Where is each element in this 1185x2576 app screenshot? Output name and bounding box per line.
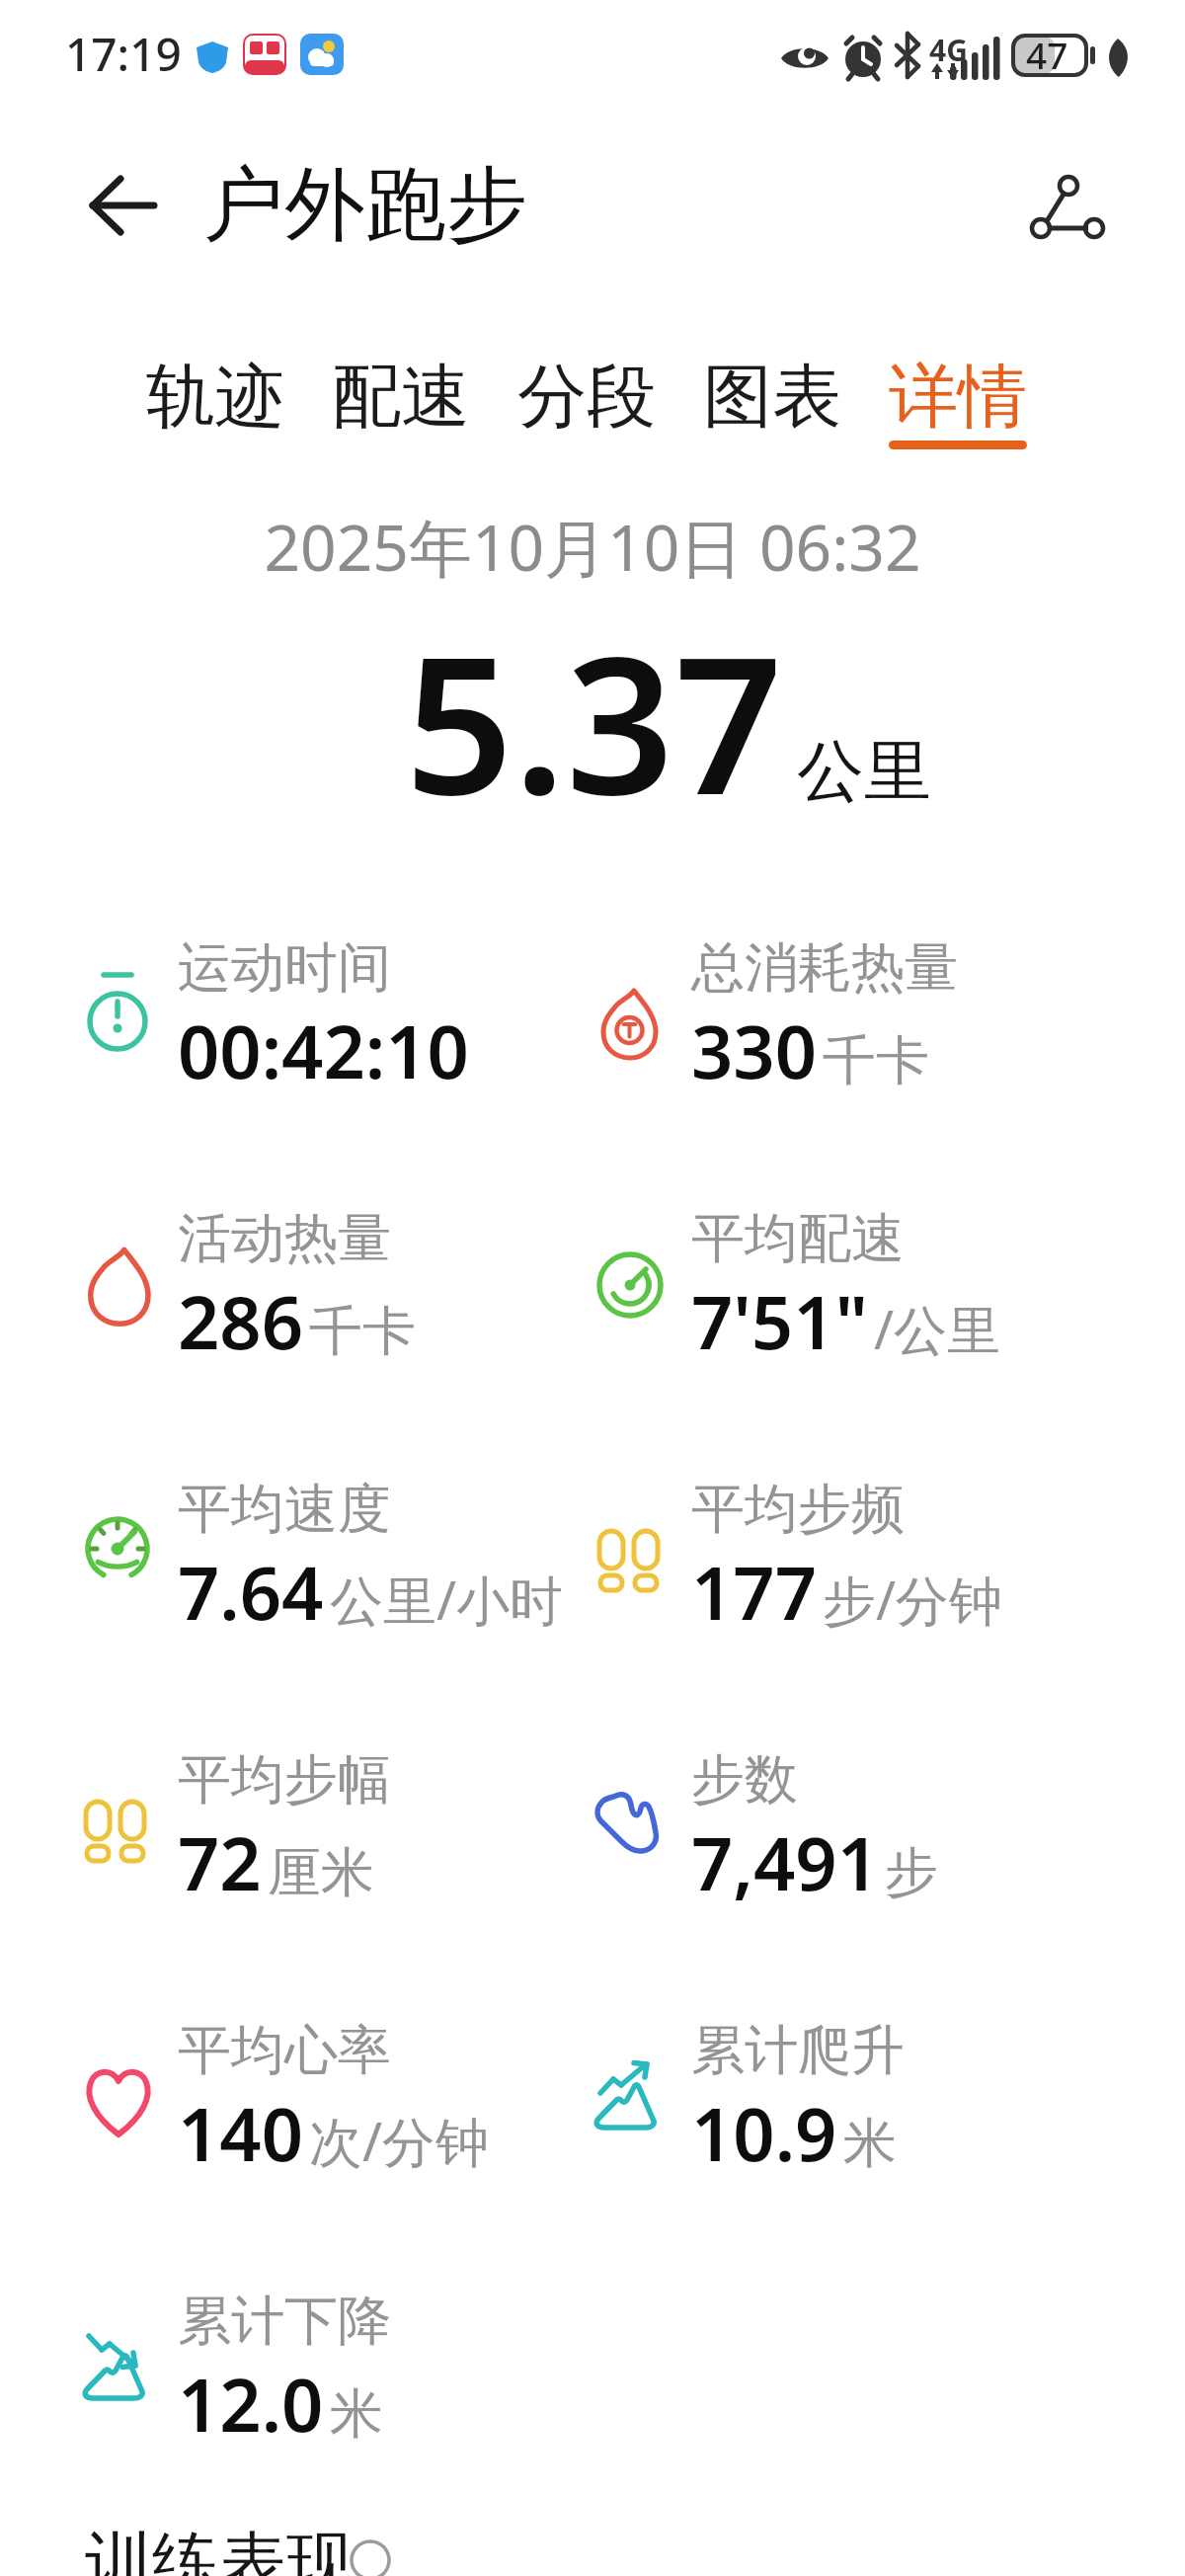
- staticText: 千卡: [309, 1298, 416, 1365]
- button[interactable]: [87, 174, 162, 237]
- staticText: 140: [178, 2083, 303, 2183]
- staticText: 286: [178, 1271, 303, 1371]
- staticText: 17:19: [65, 23, 182, 85]
- staticText: 公里: [797, 730, 931, 815]
- staticText: 运动时间: [178, 934, 391, 1002]
- staticText: 00:42:10: [178, 1001, 469, 1100]
- staticText: 72: [178, 1812, 262, 1912]
- staticText: 步: [885, 1839, 938, 1906]
- staticText: 177: [691, 1542, 817, 1642]
- staticText: 330: [691, 1001, 817, 1100]
- staticText: /公里: [874, 1292, 1001, 1365]
- staticText: 平均步频: [691, 1476, 905, 1543]
- staticText: 7.64: [178, 1542, 324, 1642]
- staticText: 厘米: [268, 1839, 374, 1906]
- button[interactable]: 配速: [332, 354, 470, 441]
- button[interactable]: 轨迹: [146, 354, 284, 441]
- staticText: 训练表现: [85, 2522, 354, 2576]
- button[interactable]: 分段: [517, 354, 656, 441]
- staticText: 平均速度: [178, 1476, 391, 1543]
- staticText: 平均配速: [691, 1205, 905, 1272]
- staticText: 12.0: [178, 2354, 324, 2454]
- staticText: 7'51": [691, 1271, 868, 1371]
- staticText: 公里/小时: [330, 1563, 564, 1636]
- button[interactable]: 详情: [889, 354, 1027, 441]
- staticText: 10.9: [691, 2083, 837, 2183]
- staticText: 2025年10月10日 06:32: [0, 504, 1185, 590]
- staticText: 次/分钟: [309, 2104, 490, 2177]
- staticText: 5.37: [405, 592, 783, 850]
- staticText: 步数: [691, 1746, 798, 1813]
- staticText: 累计下降: [178, 2288, 391, 2355]
- staticText: 活动热量: [178, 1205, 391, 1272]
- button[interactable]: 图表: [703, 354, 841, 441]
- staticText: 总消耗热量: [691, 934, 958, 1002]
- staticText: 4G: [929, 30, 968, 70]
- staticText: 户外跑步: [203, 154, 527, 256]
- staticText: 47: [1026, 30, 1068, 79]
- staticText: 累计爬升: [691, 2017, 905, 2084]
- staticText: 7,491: [691, 1812, 879, 1912]
- staticText: 平均步幅: [178, 1746, 391, 1813]
- staticText: 步/分钟: [823, 1563, 1003, 1636]
- staticText: 千卡: [823, 1027, 929, 1094]
- staticText: 米: [330, 2380, 383, 2448]
- staticText: 平均心率: [178, 2017, 391, 2084]
- button[interactable]: [1023, 170, 1108, 247]
- staticText: 米: [843, 2110, 897, 2177]
